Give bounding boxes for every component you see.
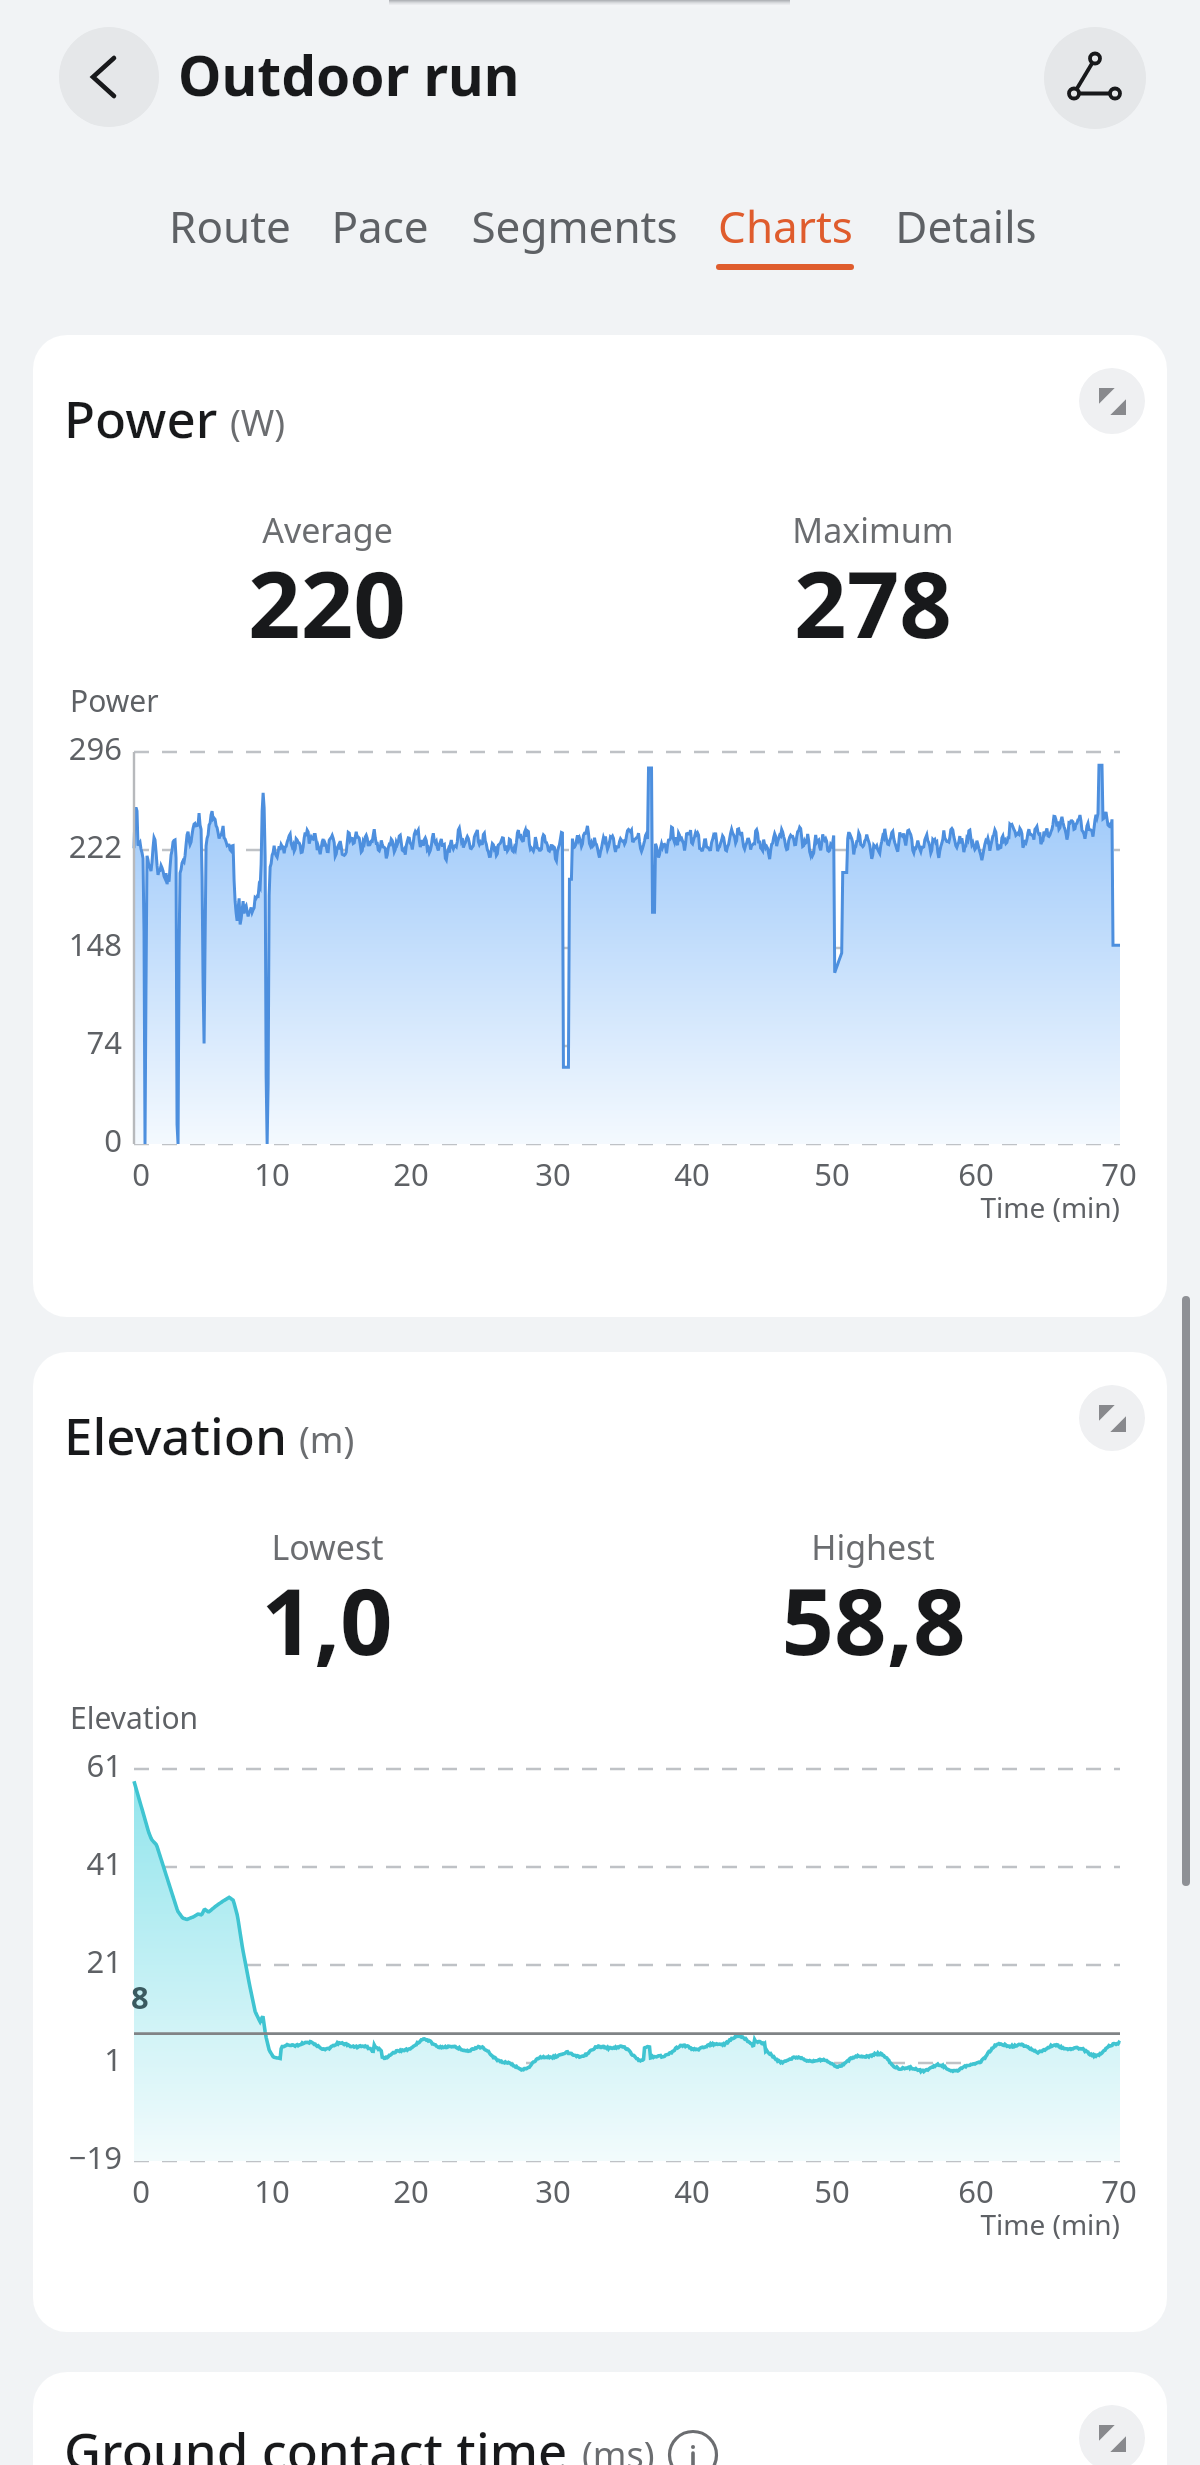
staticText: 30 — [535, 1153, 571, 1195]
staticText: (m) — [299, 1415, 355, 1464]
staticText: 220 — [248, 540, 406, 665]
button[interactable]: Power — [33, 335, 1167, 1317]
staticText: Lowest — [271, 1524, 384, 1570]
staticText: Time (min) — [980, 2205, 1120, 2243]
button[interactable]: Ground contact time — [33, 2372, 1167, 2465]
staticText: 50 — [814, 2170, 850, 2212]
staticText: −19 — [68, 2136, 122, 2178]
button[interactable]: Segments — [468, 196, 680, 276]
staticText: Route — [169, 196, 291, 256]
button[interactable]: Expand chart — [1079, 1385, 1145, 1451]
staticText: Details — [895, 196, 1037, 256]
staticText: 0 — [104, 1119, 122, 1161]
button[interactable]: Route — [166, 196, 294, 276]
staticText: 40 — [674, 1153, 710, 1195]
staticText: 0 — [132, 2170, 150, 2212]
staticText: Time (min) — [980, 1188, 1120, 1226]
staticText: 1 — [104, 2038, 122, 2080]
staticText: 278 — [794, 540, 952, 665]
staticText: Average — [262, 507, 393, 553]
staticText: 20 — [393, 1153, 429, 1195]
button[interactable]: Details — [895, 196, 1037, 276]
staticText: Highest — [811, 1524, 935, 1570]
staticText: 21 — [86, 1940, 122, 1982]
staticText: 296 — [68, 727, 122, 769]
staticText: 41 — [86, 1842, 122, 1884]
staticText: Elevation — [70, 1697, 199, 1738]
staticText: Power — [70, 680, 159, 721]
staticText: 148 — [68, 923, 122, 965]
staticText: 50 — [814, 1153, 850, 1195]
staticText: 70 — [1101, 2170, 1137, 2212]
staticText: Maximum — [792, 507, 954, 553]
staticText: Segments — [471, 196, 678, 256]
button[interactable]: Expand chart — [1079, 368, 1145, 434]
staticText: 60 — [958, 1153, 994, 1195]
staticText: 8 — [131, 1976, 149, 2018]
staticText: Charts — [718, 196, 853, 256]
staticText: 0 — [132, 1153, 150, 1195]
staticText: 20 — [393, 2170, 429, 2212]
staticText: 10 — [254, 2170, 290, 2212]
staticText: 70 — [1101, 1153, 1137, 1195]
staticText: 1,0 — [261, 1557, 393, 1682]
staticText: 61 — [86, 1744, 122, 1786]
button[interactable]: Expand chart — [1079, 2405, 1145, 2465]
button[interactable]: Charts — [716, 196, 854, 276]
staticText: Pace — [331, 196, 429, 256]
staticText: 74 — [86, 1021, 122, 1063]
staticText: 40 — [674, 2170, 710, 2212]
button[interactable]: Back — [59, 27, 159, 127]
button[interactable]: Pace — [330, 196, 430, 276]
staticText: Ground contact time — [64, 2415, 568, 2465]
staticText: 60 — [958, 2170, 994, 2212]
button[interactable]: Share — [1044, 27, 1146, 129]
staticText: 222 — [68, 825, 122, 867]
staticText: (ms) — [582, 2430, 655, 2465]
staticText: 58,8 — [781, 1557, 966, 1682]
staticText: Outdoor run — [178, 37, 520, 112]
staticText: 10 — [254, 1153, 290, 1195]
staticText: Power — [64, 383, 218, 452]
staticText: (W) — [230, 398, 286, 447]
staticText: Elevation — [64, 1400, 287, 1469]
button[interactable]: Elevation — [33, 1352, 1167, 2332]
staticText: 30 — [535, 2170, 571, 2212]
